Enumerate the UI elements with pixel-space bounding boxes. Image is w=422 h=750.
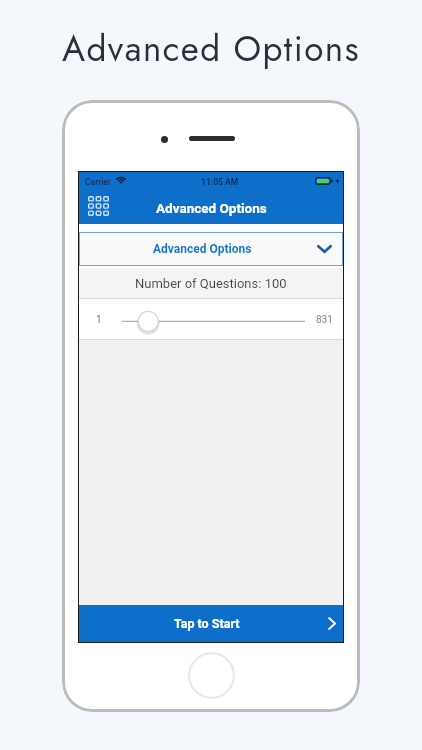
staticText: 831 xyxy=(316,314,333,326)
button[interactable]: Advanced Options xyxy=(79,232,343,266)
staticText: Number of Questions: 100 xyxy=(135,276,287,291)
staticText: 1 xyxy=(96,314,102,326)
staticText: Advanced Options xyxy=(156,200,267,216)
staticText: Tap to Start xyxy=(174,616,240,631)
staticText: Carrier xyxy=(85,177,111,187)
button[interactable]: Tap to Start xyxy=(79,605,343,642)
staticText: Advanced Options xyxy=(62,24,360,75)
staticText: 11:05 AM xyxy=(201,177,239,187)
staticText: Advanced Options xyxy=(153,242,252,256)
button[interactable]: App grid menu xyxy=(84,194,112,222)
